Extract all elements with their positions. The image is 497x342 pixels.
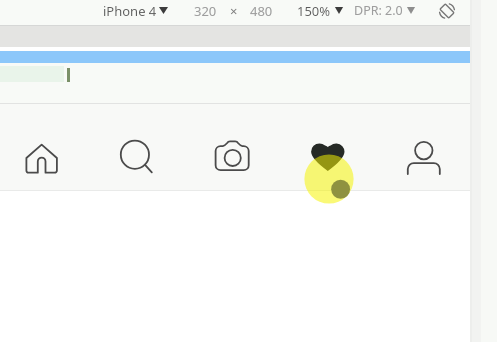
button[interactable]: Home: [14, 110, 71, 184]
button[interactable]: Search: [108, 110, 165, 184]
staticText: DPR: 2.0: [354, 2, 403, 19]
button[interactable]: Rotate device: [434, 0, 459, 23]
staticText: 320: [194, 2, 217, 20]
button[interactable]: iPhone 4: [100, 0, 172, 23]
button[interactable]: Activity: [301, 110, 358, 184]
button[interactable]: 150%: [294, 0, 347, 23]
button[interactable]: Profile: [397, 110, 454, 184]
button[interactable]: DPR: 2.0: [351, 0, 419, 23]
staticText: iPhone 4: [103, 2, 157, 20]
staticText: 150%: [297, 2, 331, 20]
button[interactable]: Camera: [205, 110, 262, 184]
staticText: ×: [230, 2, 238, 20]
staticText: 480: [250, 2, 273, 20]
